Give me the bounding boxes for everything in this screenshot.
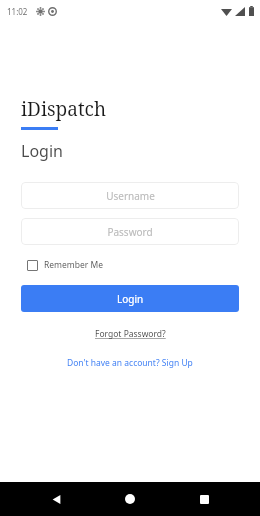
button[interactable]: Don't have an account? Sign Up bbox=[61, 355, 199, 371]
staticText: Password bbox=[107, 225, 153, 239]
staticText: iDispatch bbox=[21, 96, 107, 122]
button[interactable]: Back bbox=[38, 482, 74, 516]
staticText: Login bbox=[21, 140, 63, 162]
button[interactable]: Remember Me bbox=[27, 259, 104, 271]
button[interactable]: Recent apps bbox=[186, 482, 222, 516]
staticText: Login bbox=[117, 292, 144, 306]
staticText: 11:02 bbox=[7, 6, 28, 17]
staticText: Username bbox=[106, 189, 155, 203]
button[interactable]: Home bbox=[112, 482, 148, 516]
button[interactable]: Password bbox=[21, 218, 239, 245]
staticText: Remember Me bbox=[44, 259, 104, 271]
button[interactable]: Forgot Password? bbox=[89, 326, 172, 342]
button[interactable]: Username bbox=[21, 182, 239, 209]
button[interactable]: Login bbox=[21, 285, 239, 312]
